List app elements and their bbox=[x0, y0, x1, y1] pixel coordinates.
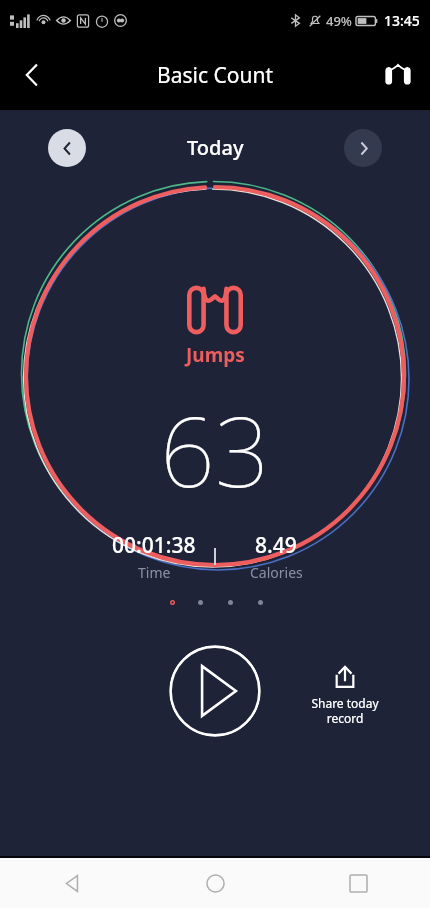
button[interactable]: Home bbox=[144, 858, 287, 908]
staticText: 63 bbox=[160, 384, 270, 515]
staticText: 00:01:38 bbox=[112, 531, 196, 560]
staticText: Share today record bbox=[311, 695, 379, 726]
staticText: Calories bbox=[250, 563, 303, 582]
button[interactable]: Back bbox=[0, 858, 144, 908]
button[interactable]: Next day bbox=[344, 129, 382, 167]
button[interactable]: Back bbox=[8, 51, 56, 99]
staticText: 8.49 bbox=[255, 531, 297, 560]
button[interactable]: Share today record bbox=[305, 660, 385, 730]
staticText: Basic Count bbox=[157, 61, 273, 90]
staticText: 13:45 bbox=[384, 11, 420, 30]
staticText: Today bbox=[187, 134, 244, 161]
staticText: Jumps bbox=[186, 342, 245, 368]
button[interactable]: Previous day bbox=[48, 129, 86, 167]
button[interactable]: Recent apps bbox=[287, 858, 430, 908]
button[interactable]: Device bbox=[374, 51, 422, 99]
staticText: Time bbox=[138, 563, 171, 582]
button[interactable]: Start bbox=[169, 645, 261, 737]
staticText: 49% bbox=[326, 12, 352, 30]
